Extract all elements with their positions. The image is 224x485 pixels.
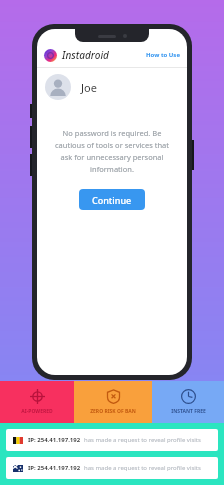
button[interactable]: Continue: [79, 189, 145, 210]
other: Zero risk of ban: [106, 389, 121, 404]
staticText: How to Use: [146, 51, 180, 59]
staticText: AI-POWERED: [21, 408, 53, 415]
button[interactable]: IP: 254.41.197.192: [13, 429, 211, 451]
staticText: IP: 254.41.197.192: [28, 436, 81, 444]
staticText: INSTANT FREE: [171, 408, 206, 415]
staticText: Instadroid: [62, 48, 109, 62]
button[interactable]: IP: 254.41.197.192: [13, 457, 211, 479]
staticText: No password is required. Be cautious of …: [49, 128, 175, 175]
staticText: has made a request to reveal profile vis…: [84, 464, 201, 472]
staticText: Joe: [81, 80, 97, 95]
button[interactable]: Zero risk of ban: [74, 381, 152, 423]
staticText: IP: 254.41.197.192: [28, 464, 81, 472]
staticText: Continue: [92, 194, 132, 206]
button[interactable]: AI powered: [0, 381, 74, 423]
button[interactable]: How to Use: [146, 51, 180, 59]
other: Instant free: [181, 389, 196, 404]
button[interactable]: Joe: [45, 68, 179, 106]
other: AI powered: [30, 389, 45, 404]
staticText: ZERO RISK OF BAN: [90, 408, 136, 415]
button[interactable]: Instant free: [152, 381, 224, 423]
staticText: has made a request to reveal profile vis…: [84, 436, 201, 444]
